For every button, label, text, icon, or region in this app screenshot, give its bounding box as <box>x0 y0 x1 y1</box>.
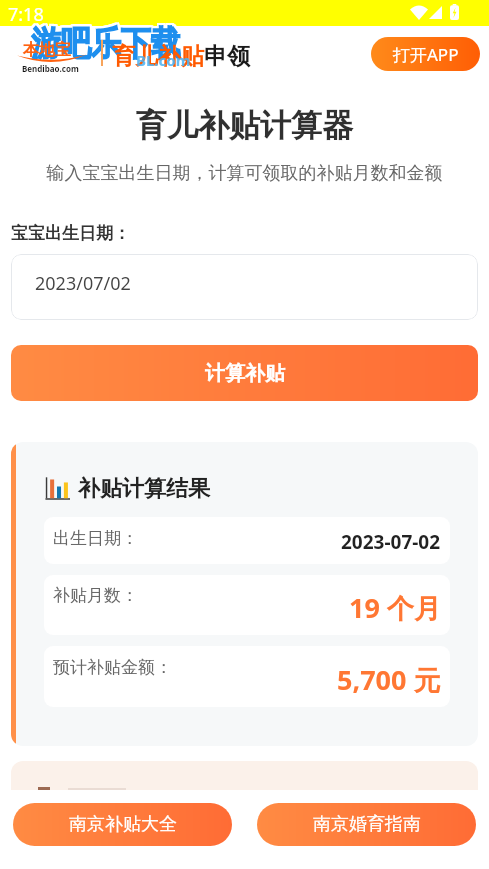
staticText: 游吧乐下载 <box>29 24 179 67</box>
button[interactable]: 补贴月数： <box>44 575 450 635</box>
staticText: 7:18 <box>8 2 44 27</box>
staticText: 游吧乐下载 <box>30 20 180 63</box>
staticText: 预计补贴金额： <box>53 657 172 678</box>
button[interactable]: 出生日期： <box>44 517 450 564</box>
staticText: 游吧乐下载 <box>31 23 181 66</box>
staticText: 游吧乐下载 <box>29 23 179 66</box>
button[interactable]: 打开APP <box>371 37 480 71</box>
staticText: 出生日期： <box>53 528 138 549</box>
staticText: 游吧乐下载 <box>31 21 181 64</box>
staticText: 游吧乐下载 <box>33 20 182 63</box>
staticText: 游吧乐下载 <box>33 23 182 66</box>
staticText: 南京补贴大全 <box>69 813 177 836</box>
button[interactable]: 2023/07/02 <box>11 254 478 320</box>
staticText: 游吧乐下载 <box>30 24 180 67</box>
staticText: 申领 <box>204 42 250 71</box>
staticText: 游吧乐下载 <box>32 23 181 66</box>
staticText: 育儿补贴 <box>112 42 204 71</box>
staticText: 南京婚育指南 <box>313 813 421 836</box>
button[interactable]: 南京婚育指南 <box>257 803 476 846</box>
button[interactable]: 计算补贴 <box>11 345 478 401</box>
staticText: 宝宝出生日期： <box>11 223 130 244</box>
staticText: 游吧乐下载 <box>32 20 181 63</box>
staticText: 育儿补贴计算器 <box>0 106 489 145</box>
staticText: 游吧乐下载 <box>31 20 181 63</box>
staticText: 补贴月数： <box>53 585 138 606</box>
staticText: 打开APP <box>393 43 459 66</box>
staticText: 输入宝宝出生日期，计算可领取的补贴月数和金额 <box>0 162 489 185</box>
staticText: 5,700 元 <box>337 661 441 698</box>
staticText: 游吧乐下载 <box>33 24 182 67</box>
staticText: 游吧乐下载 <box>30 21 180 64</box>
staticText: 游吧乐下载 <box>29 22 179 65</box>
staticText: 游吧乐下载 <box>33 21 182 64</box>
staticText: 19 个月 <box>349 589 441 626</box>
staticText: 游吧乐下载 <box>32 24 181 67</box>
staticText: 游吧乐下载 <box>30 23 180 66</box>
staticText: 2023/07/02 <box>35 271 131 296</box>
staticText: 游吧乐下载 <box>29 20 179 63</box>
staticText: 计算补贴 <box>205 361 285 386</box>
staticText: 2023-07-02 <box>341 529 441 555</box>
staticText: 游吧乐下载 <box>32 22 181 65</box>
staticText: 游吧乐下载 <box>33 22 182 65</box>
staticText: 游吧乐下载 <box>32 21 181 64</box>
button[interactable]: 南京补贴大全 <box>13 803 232 846</box>
staticText: 游吧乐下载 <box>30 22 180 65</box>
staticText: Bendibao.com <box>22 63 79 74</box>
staticText: 游吧乐下载 <box>31 22 181 65</box>
button[interactable]: 预计补贴金额： <box>44 646 450 707</box>
staticText: 补贴计算结果 <box>78 475 210 503</box>
staticText: BL.com <box>136 50 191 70</box>
staticText: 本地宝 <box>23 40 71 60</box>
staticText: 游吧乐下载 <box>29 21 179 64</box>
staticText: 游吧乐下载 <box>31 24 181 67</box>
